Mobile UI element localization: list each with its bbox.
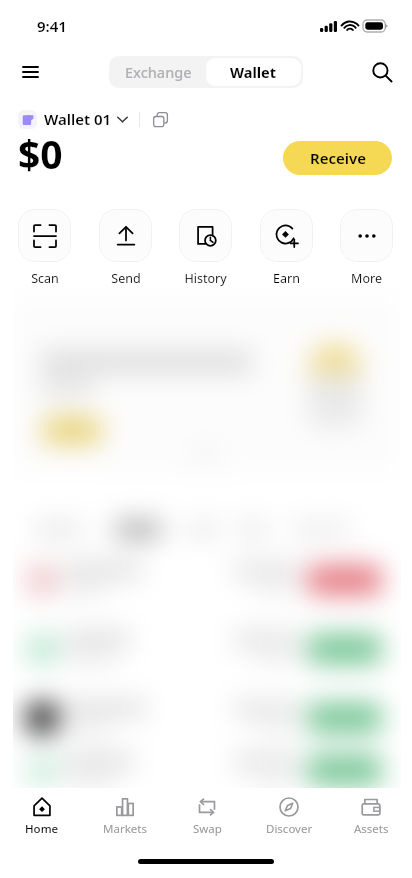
staticText: Swap [193,821,222,837]
button[interactable]: Wallet 01 [18,109,128,129]
staticText: Receive [310,148,366,168]
button[interactable]: Receive [283,141,392,175]
button[interactable]: Exchange [111,58,206,86]
button[interactable]: Scan [18,209,71,287]
staticText: Exchange [125,62,192,82]
button[interactable]: Markets [83,788,166,844]
staticText: More [351,270,382,287]
button[interactable]: Home [0,788,83,844]
staticText: Earn [273,270,300,287]
staticText: $0 [18,127,63,180]
button[interactable]: Send [99,209,152,287]
staticText: Scan [31,270,59,287]
staticText: Home [25,821,59,837]
staticText: Wallet [230,62,277,82]
staticText: 9:41 [37,16,67,36]
staticText: Assets [354,821,389,837]
button[interactable]: Swap [166,788,248,844]
button[interactable]: Assets [330,788,412,844]
staticText: Send [111,270,141,287]
button[interactable]: Copy address [149,108,171,130]
button[interactable]: Menu [11,53,49,91]
button[interactable]: History [179,209,232,287]
staticText: Markets [103,821,147,837]
button[interactable]: Discover [248,788,330,844]
staticText: Wallet 01 [44,109,112,129]
staticText: History [184,270,227,287]
button[interactable]: More [340,209,393,287]
button[interactable]: Earn [260,209,313,287]
button[interactable]: Wallet [206,58,301,86]
button[interactable]: Search [363,53,401,91]
staticText: Discover [266,821,313,837]
